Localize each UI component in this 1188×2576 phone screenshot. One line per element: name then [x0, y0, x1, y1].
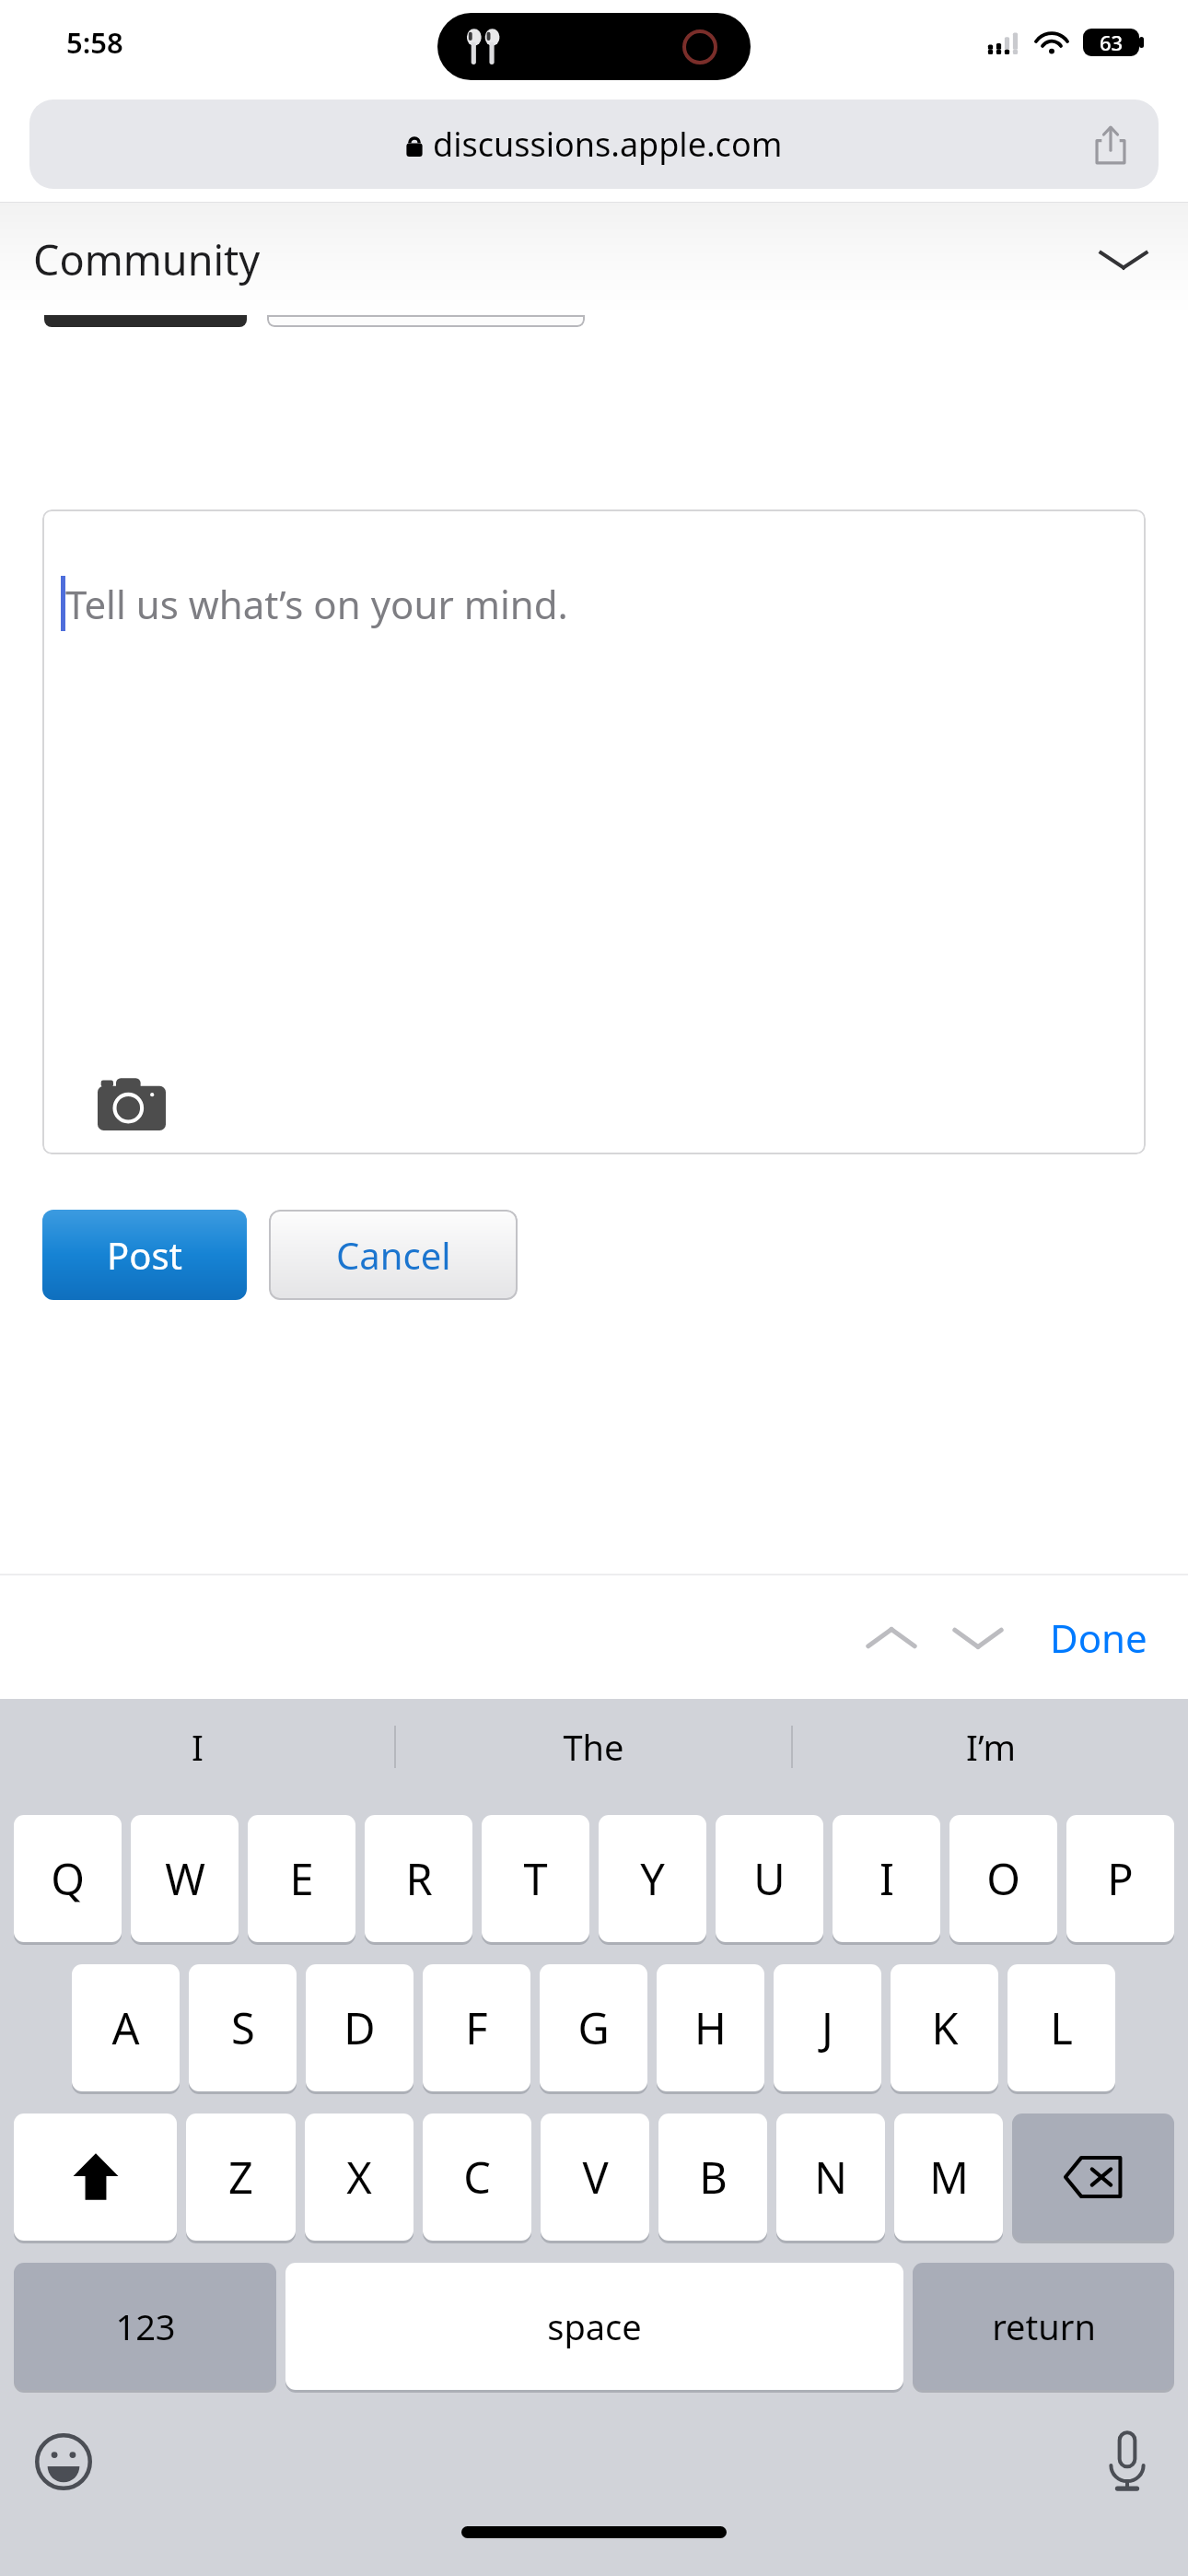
staticText: P	[1107, 1849, 1134, 1908]
button[interactable]: W	[131, 1815, 239, 1942]
button[interactable]: T	[482, 1815, 589, 1942]
staticText: N	[814, 2148, 847, 2207]
button[interactable]: C	[423, 2113, 531, 2241]
staticText: X	[346, 2148, 372, 2207]
button[interactable]: L	[1007, 1964, 1115, 2091]
other: Expand menu	[1098, 243, 1149, 275]
button[interactable]: U	[716, 1815, 823, 1942]
staticText: H	[694, 1998, 727, 2057]
button[interactable]: Previous field	[864, 1620, 919, 1657]
staticText: I	[879, 1849, 894, 1908]
staticText: return	[992, 2302, 1096, 2350]
button[interactable]: Y	[599, 1815, 706, 1942]
staticText: L	[1050, 1998, 1073, 2057]
button[interactable]: G	[540, 1964, 647, 2091]
button[interactable]: X	[305, 2113, 413, 2241]
button[interactable]: V	[541, 2113, 649, 2241]
staticText: Cancel	[336, 1230, 451, 1280]
button[interactable]: I’m	[793, 1699, 1188, 1795]
staticText: E	[289, 1849, 314, 1908]
staticText: D	[344, 1998, 376, 2057]
button[interactable]: Add photo	[98, 1077, 166, 1130]
button[interactable]: Done	[1046, 1604, 1151, 1671]
staticText: Z	[228, 2148, 253, 2207]
button[interactable]: E	[248, 1815, 355, 1942]
staticText: S	[231, 1998, 255, 2057]
button[interactable]: Cancel	[269, 1210, 518, 1300]
staticText: W	[165, 1849, 205, 1908]
button[interactable]: S	[189, 1964, 297, 2091]
button[interactable]: Backspace	[1012, 2113, 1174, 2241]
staticText: R	[405, 1849, 433, 1908]
staticText: discussions.apple.com	[433, 122, 783, 167]
button[interactable]: return	[913, 2263, 1174, 2390]
button[interactable]: Tell us what’s on your mind.	[42, 509, 1146, 1154]
staticText: J	[821, 1998, 833, 2057]
staticText: A	[111, 1998, 140, 2057]
button[interactable]: D	[306, 1964, 413, 2091]
staticText: 5:58	[66, 23, 123, 62]
staticText: K	[931, 1998, 959, 2057]
staticText: Community	[33, 231, 261, 287]
button[interactable]: M	[894, 2113, 1003, 2241]
staticText: space	[547, 2302, 642, 2350]
button[interactable]: R	[365, 1815, 472, 1942]
staticText: T	[523, 1849, 548, 1908]
button[interactable]: Shift	[14, 2113, 177, 2241]
staticText: O	[986, 1849, 1020, 1908]
staticText: M	[929, 2148, 969, 2207]
button[interactable]: Z	[186, 2113, 296, 2241]
button[interactable]: A	[72, 1964, 180, 2091]
button[interactable]: K	[891, 1964, 998, 2091]
button[interactable]: Emoji	[35, 2433, 92, 2490]
staticText: The	[563, 1723, 624, 1771]
staticText: U	[753, 1849, 786, 1908]
button[interactable]: O	[949, 1815, 1057, 1942]
staticText: 123	[115, 2302, 176, 2350]
staticText: Q	[51, 1849, 85, 1908]
button[interactable]: Next field	[950, 1620, 1006, 1657]
button[interactable]: B	[658, 2113, 767, 2241]
button[interactable]: Post	[42, 1210, 247, 1300]
button[interactable]: P	[1066, 1815, 1174, 1942]
staticText: Post	[107, 1230, 182, 1280]
staticText: I’m	[966, 1723, 1016, 1771]
button[interactable]: Q	[14, 1815, 122, 1942]
staticText: Done	[1050, 1611, 1147, 1664]
button[interactable]: J	[774, 1964, 881, 2091]
staticText: F	[465, 1998, 488, 2057]
button[interactable]: discussions.apple.com	[29, 100, 1159, 189]
button[interactable]: 123	[14, 2263, 276, 2390]
button[interactable]: Share	[1090, 124, 1131, 165]
staticText: V	[582, 2148, 609, 2207]
button[interactable]: Community	[0, 203, 1188, 315]
button[interactable]: F	[423, 1964, 530, 2091]
staticText: Tell us what’s on your mind.	[65, 578, 568, 630]
staticText: 63	[1100, 29, 1124, 56]
staticText: G	[577, 1998, 610, 2057]
staticText: C	[463, 2148, 491, 2207]
button[interactable]: H	[657, 1964, 764, 2091]
button[interactable]: I	[0, 1699, 394, 1795]
button[interactable]: The	[396, 1699, 791, 1795]
staticText: I	[192, 1723, 204, 1771]
button[interactable]: I	[833, 1815, 940, 1942]
staticText: B	[699, 2148, 728, 2207]
button[interactable]: space	[285, 2263, 903, 2390]
button[interactable]: Dictation	[1107, 2431, 1147, 2492]
button[interactable]: N	[776, 2113, 885, 2241]
staticText: Y	[640, 1849, 665, 1908]
